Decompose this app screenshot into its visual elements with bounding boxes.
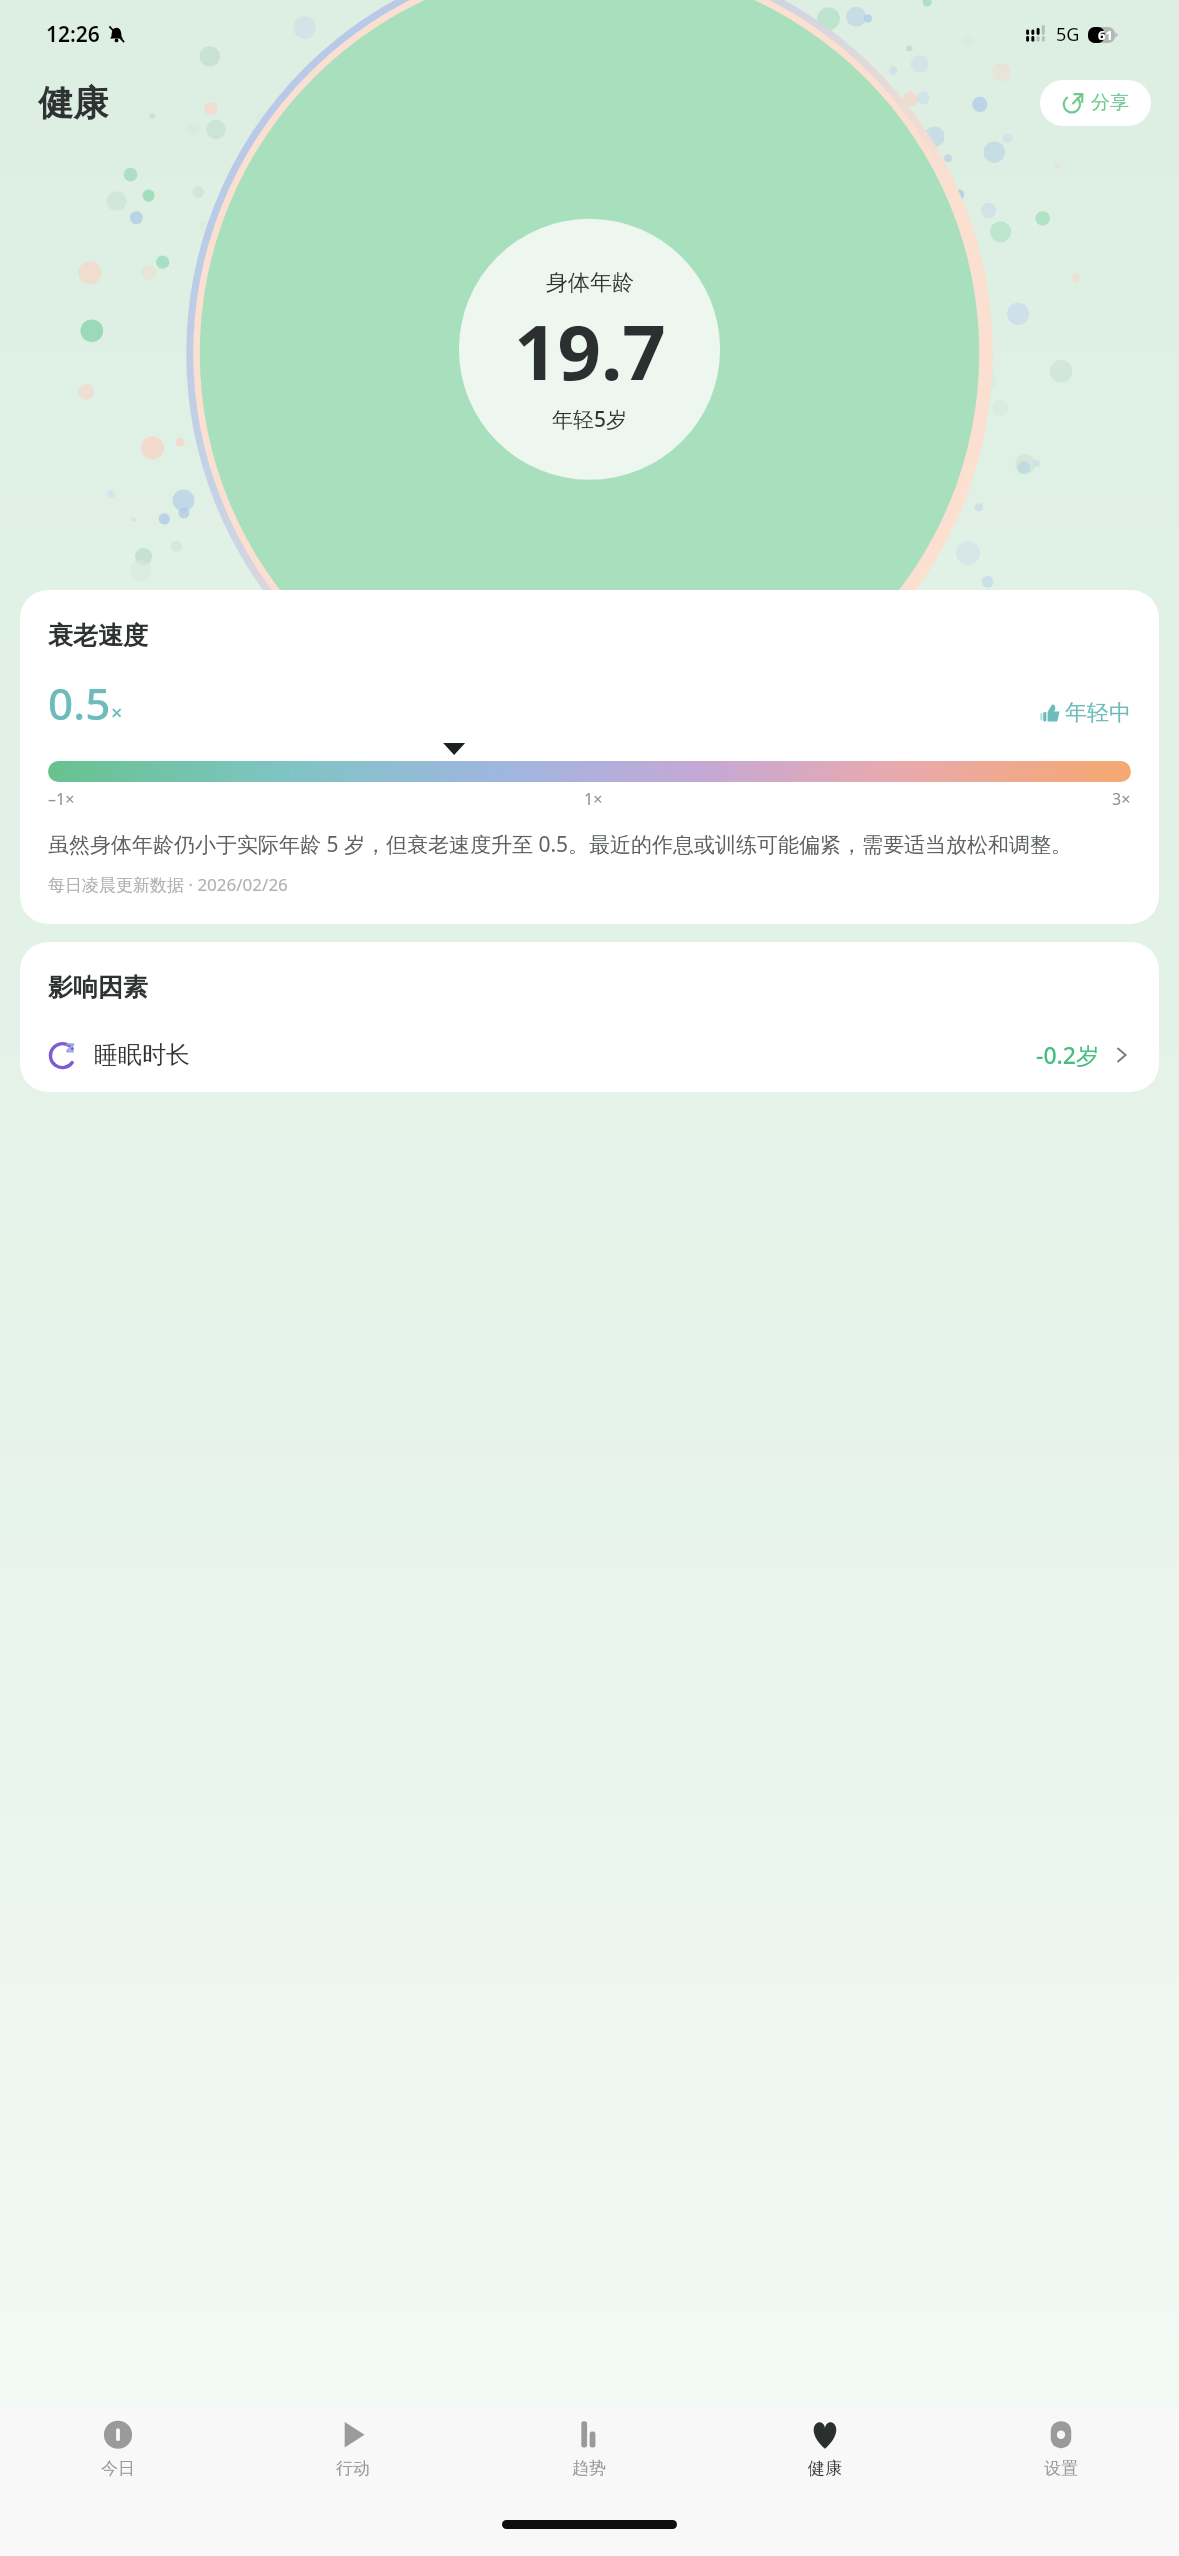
staticText: 年轻5岁 — [552, 405, 628, 434]
button[interactable]: 健康 — [707, 2408, 943, 2508]
staticText: 行动 — [336, 2458, 370, 2479]
button[interactable]: 趋势 — [471, 2408, 707, 2508]
staticText: 每日凌晨更新数据 · 2026/02/26 — [48, 873, 288, 896]
button[interactable]: 设置 — [943, 2408, 1179, 2508]
staticText: 虽然身体年龄仍小于实际年龄 5 岁，但衰老速度升至 0.5。最近的作息或训练可能… — [48, 830, 1073, 859]
staticText: 设置 — [1044, 2458, 1078, 2479]
staticText: 健康 — [808, 2458, 842, 2479]
button[interactable]: 今日 — [0, 2408, 235, 2508]
staticText: 1× — [584, 788, 603, 810]
staticText: 衰老速度 — [48, 620, 148, 651]
button[interactable]: 分享 — [1040, 80, 1151, 126]
staticText: 3× — [1112, 788, 1131, 810]
staticText: -0.2岁 — [1036, 1039, 1099, 1070]
staticText: 今日 — [101, 2458, 135, 2479]
staticText: 身体年龄 — [546, 269, 634, 297]
staticText: 影响因素 — [48, 972, 148, 1003]
staticText: –1× — [48, 788, 75, 810]
button[interactable]: 行动 — [235, 2408, 471, 2508]
staticText: 0.5 — [48, 673, 111, 733]
staticText: 19.7 — [514, 299, 666, 403]
staticText: 5G — [1056, 22, 1080, 47]
staticText: 趋势 — [572, 2458, 606, 2479]
staticText: 61 — [1098, 26, 1113, 44]
staticText: 12:26 — [46, 20, 100, 49]
staticText: 健康 — [38, 81, 108, 125]
staticText: 睡眠时长 — [94, 1040, 190, 1070]
staticText: 分享 — [1091, 91, 1129, 115]
staticText: 年轻中 — [1065, 699, 1131, 727]
staticText: × — [111, 699, 123, 726]
button[interactable]: 衰老速度 — [20, 590, 1159, 924]
button[interactable]: 睡眠时长 — [48, 1033, 1131, 1076]
